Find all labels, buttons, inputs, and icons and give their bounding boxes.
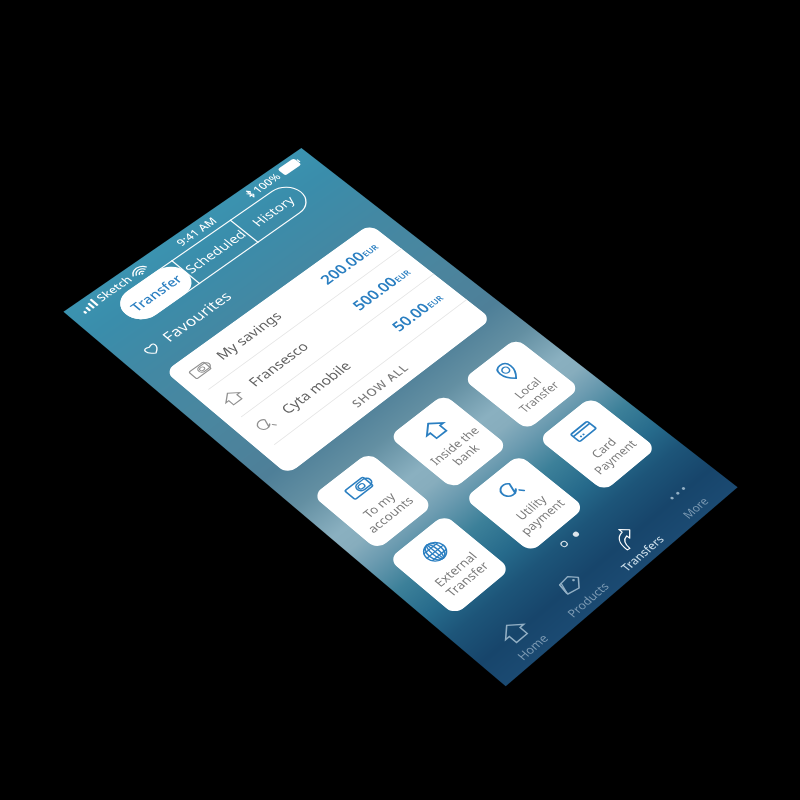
button[interactable]: SHOW ALL [263,300,492,475]
staticText: 9:41 AM [172,214,220,249]
button[interactable]: More [638,462,729,537]
button[interactable]: Scheduled [172,220,259,283]
staticText: Cyta mobile [276,357,356,418]
button[interactable]: Products [529,551,623,630]
button[interactable]: My savings [176,232,390,389]
staticText: Inside the bank [426,423,494,478]
staticText: Transfer [126,271,187,315]
staticText: Transfers [617,532,668,574]
button[interactable]: Local Transfer [463,338,580,430]
staticText: Card Payment [578,427,641,478]
staticText: Utility payment [505,486,569,538]
button[interactable]: History [230,180,315,242]
staticText: 200.00 [315,248,369,288]
staticText: History [247,192,299,230]
staticText: Favourites [157,287,236,345]
button[interactable]: Cyta mobile [241,282,456,444]
button[interactable]: Fransesco [209,257,423,417]
button[interactable]: Home [472,597,568,678]
staticText: To my accounts [352,483,418,537]
staticText: More [679,494,712,521]
staticText: Local Transfer [503,369,563,416]
button[interactable]: Utility payment [464,454,585,553]
button[interactable]: Transfer [111,260,200,326]
button[interactable]: To my accounts [312,452,434,550]
staticText: My savings [211,308,286,363]
staticText: Scheduled [180,226,250,277]
button[interactable]: Inside the bank [389,394,508,489]
button[interactable]: Favourites [136,287,236,361]
staticText: 50.00 [387,298,435,335]
staticText: Sketch [92,273,135,304]
staticText: SHOW ALL [348,361,412,410]
staticText: Fransesco [244,338,313,390]
staticText: External Transfer [430,548,493,600]
staticText: Products [563,578,613,620]
staticText: EUR [391,267,413,284]
button[interactable]: External Transfer [388,514,511,616]
staticText: EUR [424,293,446,310]
staticText: 500.00 [347,273,402,314]
staticText: Home [513,631,552,663]
button[interactable]: Transfers [584,506,677,583]
button[interactable]: Card Payment [538,396,657,492]
staticText: EUR [359,242,381,258]
staticText: 100% [249,170,284,196]
